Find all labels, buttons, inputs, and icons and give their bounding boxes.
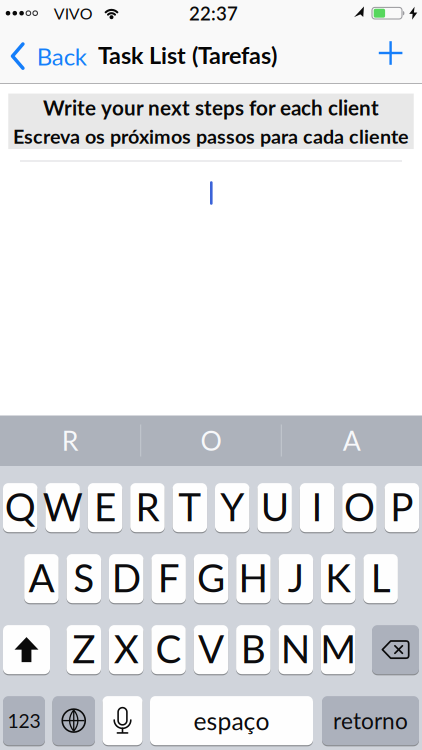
staticText: A xyxy=(343,424,361,456)
button[interactable]: T xyxy=(173,482,207,533)
button[interactable]: U xyxy=(257,482,292,533)
button[interactable]: N xyxy=(278,624,313,675)
staticText: Task List (Tarefas) xyxy=(98,41,277,69)
button[interactable]: O xyxy=(342,482,377,533)
button[interactable]: E xyxy=(88,482,122,533)
staticText: Y xyxy=(220,483,244,530)
staticText: R xyxy=(62,424,79,456)
button[interactable]: Y xyxy=(215,482,249,533)
button[interactable]: D xyxy=(109,553,143,604)
staticText: V xyxy=(198,625,224,672)
button[interactable]: O xyxy=(142,416,280,464)
button[interactable]: Delete xyxy=(372,624,419,675)
button[interactable]: W xyxy=(45,482,80,533)
staticText: O xyxy=(200,424,221,456)
staticText: X xyxy=(114,625,139,672)
button[interactable]: Q xyxy=(3,482,37,533)
button[interactable]: retorno xyxy=(322,695,419,746)
button[interactable]: I xyxy=(300,482,334,533)
staticText: T xyxy=(178,483,201,530)
button[interactable]: C xyxy=(151,624,186,675)
staticText: espaço xyxy=(193,706,269,735)
staticText: L xyxy=(371,554,391,601)
staticText: 22:37 xyxy=(189,2,238,25)
staticText: Q xyxy=(5,483,36,530)
button[interactable]: L xyxy=(363,553,398,604)
staticText: Escreva os próximos passos para cada cli… xyxy=(13,124,409,148)
staticText: F xyxy=(158,554,180,601)
staticText: M xyxy=(320,625,356,672)
button[interactable]: R xyxy=(130,482,165,533)
button[interactable]: M xyxy=(321,624,355,675)
staticText: E xyxy=(94,483,116,530)
staticText: Back xyxy=(37,42,87,71)
button[interactable]: R xyxy=(1,416,139,464)
staticText: S xyxy=(73,554,94,601)
staticText: J xyxy=(288,554,304,601)
staticText: C xyxy=(156,625,182,672)
staticText: G xyxy=(197,554,225,601)
button[interactable]: Next keyboard xyxy=(52,695,95,746)
staticText: P xyxy=(390,483,413,530)
button[interactable]: K xyxy=(321,553,355,604)
staticText: U xyxy=(261,483,289,530)
button[interactable]: Add xyxy=(369,32,413,74)
staticText: retorno xyxy=(333,707,408,734)
staticText: I xyxy=(312,483,323,530)
button[interactable]: X xyxy=(109,624,143,675)
staticText: Write your next steps for each client xyxy=(43,95,379,120)
staticText: W xyxy=(43,483,83,530)
button[interactable]: Dictate xyxy=(102,695,142,746)
button[interactable]: P xyxy=(385,482,419,533)
button[interactable]: Back xyxy=(11,35,87,77)
staticText: H xyxy=(238,554,268,601)
button[interactable]: G xyxy=(194,553,228,604)
button[interactable]: F xyxy=(151,553,186,604)
button[interactable]: Z xyxy=(66,624,101,675)
staticText: R xyxy=(135,483,159,530)
staticText: 123 xyxy=(7,709,40,732)
staticText: A xyxy=(28,554,54,601)
staticText: N xyxy=(281,625,311,672)
button[interactable]: S xyxy=(67,553,101,604)
staticText: D xyxy=(112,554,141,601)
staticText: B xyxy=(241,625,266,672)
button[interactable]: B xyxy=(236,624,271,675)
button[interactable]: espaço xyxy=(150,695,313,746)
button[interactable]: V xyxy=(194,624,228,675)
button[interactable]: A xyxy=(283,416,421,464)
button[interactable]: Shift xyxy=(3,624,50,675)
staticText: Z xyxy=(72,625,95,672)
staticText: K xyxy=(325,554,351,601)
staticText: VIVO xyxy=(54,4,93,23)
button[interactable]: A xyxy=(24,553,59,604)
button[interactable]: J xyxy=(279,553,313,604)
button[interactable]: H xyxy=(236,553,271,604)
staticText: O xyxy=(344,483,375,530)
button[interactable]: 123 xyxy=(3,695,45,746)
